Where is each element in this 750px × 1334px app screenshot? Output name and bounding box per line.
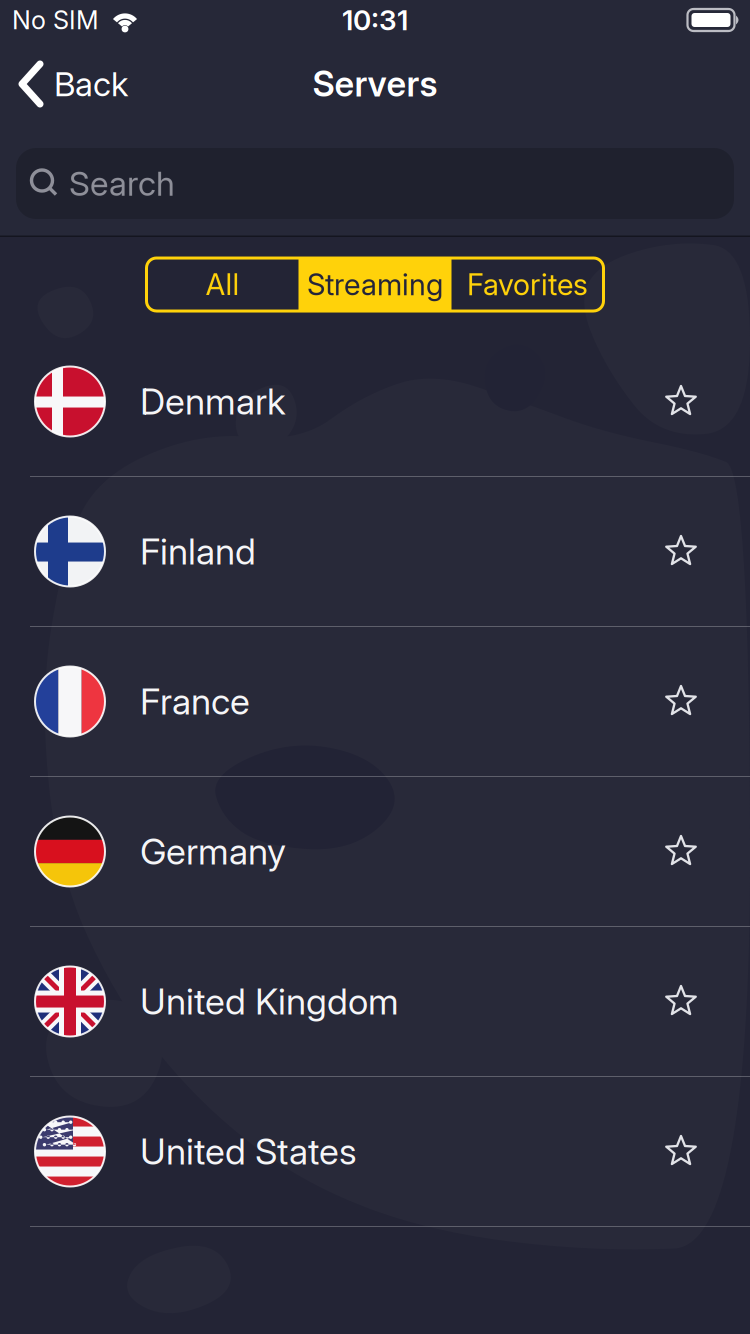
button[interactable]: United States	[0, 1077, 750, 1226]
button[interactable]	[664, 384, 698, 418]
button[interactable]	[664, 684, 698, 718]
button[interactable]: All	[146, 258, 298, 311]
button[interactable]: Finland	[0, 477, 750, 626]
button[interactable]: United Kingdom	[0, 927, 750, 1076]
button[interactable]: France	[0, 627, 750, 776]
button[interactable]	[664, 534, 698, 568]
button[interactable]: Favorites	[451, 258, 603, 311]
staticText: Finland	[140, 530, 256, 573]
button[interactable]: Germany	[0, 777, 750, 926]
staticText: United Kingdom	[140, 980, 399, 1023]
button[interactable]: Back	[0, 60, 128, 108]
staticText: 10:31	[342, 3, 408, 36]
staticText: Favorites	[467, 267, 588, 302]
button[interactable]: Streaming	[298, 258, 451, 311]
button[interactable]: Denmark	[0, 327, 750, 476]
staticText: United States	[140, 1130, 357, 1173]
button[interactable]	[664, 834, 698, 868]
staticText: Denmark	[140, 380, 286, 423]
button[interactable]	[664, 984, 698, 1018]
staticText: No SIM	[12, 5, 99, 35]
staticText: Search	[69, 164, 175, 203]
button[interactable]	[664, 1134, 698, 1168]
staticText: France	[140, 680, 250, 723]
staticText: Germany	[140, 830, 286, 873]
button[interactable]: Search	[0, 148, 750, 219]
staticText: Back	[54, 64, 128, 104]
staticText: All	[205, 267, 239, 302]
staticText: Servers	[312, 64, 437, 104]
staticText: Streaming	[307, 267, 443, 302]
